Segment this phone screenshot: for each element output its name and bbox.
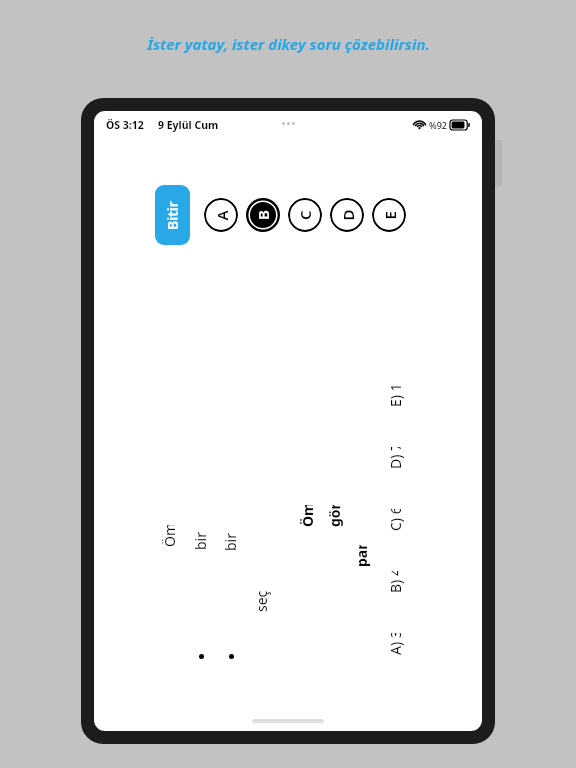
button[interactable]: C) 60 <box>386 492 408 548</box>
button[interactable]: E) 135 <box>386 368 408 424</box>
button[interactable]: A <box>204 198 238 232</box>
staticText: göre, Ömer dolabından bir şapka, bir tiş… <box>325 505 347 527</box>
button[interactable]: D <box>330 198 364 232</box>
staticText: seçmektedir. <box>252 590 274 612</box>
button[interactable]: B) 45 <box>386 554 408 610</box>
staticText: A) 30 <box>386 633 408 655</box>
staticText: B) 45 <box>386 571 408 593</box>
staticText: C) 60 <box>386 509 408 531</box>
staticText: E) 135 <box>386 385 408 407</box>
staticText: bir tişört ve bir pantolonu 9 farklı şek… <box>221 529 243 551</box>
staticText: C <box>295 210 315 220</box>
staticText: D <box>337 209 357 220</box>
staticText: B <box>253 210 273 220</box>
staticText: Ömer'in dolabında birden fazla tişörtü o… <box>298 505 320 527</box>
button[interactable]: C <box>288 198 322 232</box>
button[interactable]: E <box>372 198 406 232</box>
button[interactable]: D) 75 <box>386 430 408 486</box>
staticText: İster yatay, ister dikey soru çözebilirs… <box>147 34 430 54</box>
staticText: ÖS 3:12 <box>106 118 144 132</box>
staticText: 9 Eylül Cum <box>158 118 219 132</box>
staticText: bir şapka ve bir tişörtü 15 farklı şekil… <box>191 528 213 550</box>
button[interactable]: B <box>246 198 280 232</box>
staticText: %92 <box>429 119 447 131</box>
staticText: A <box>211 209 231 220</box>
button[interactable]: Bitir <box>155 185 190 245</box>
staticText: pantolonu kaç farklı şekilde seçebilir? <box>352 545 374 567</box>
button[interactable]: A) 30 <box>386 616 408 672</box>
staticText: Ömer giysi dolabından, <box>160 525 182 547</box>
staticText: E <box>379 210 399 219</box>
staticText: Bitir <box>163 201 182 230</box>
staticText: D) 75 <box>386 447 408 469</box>
